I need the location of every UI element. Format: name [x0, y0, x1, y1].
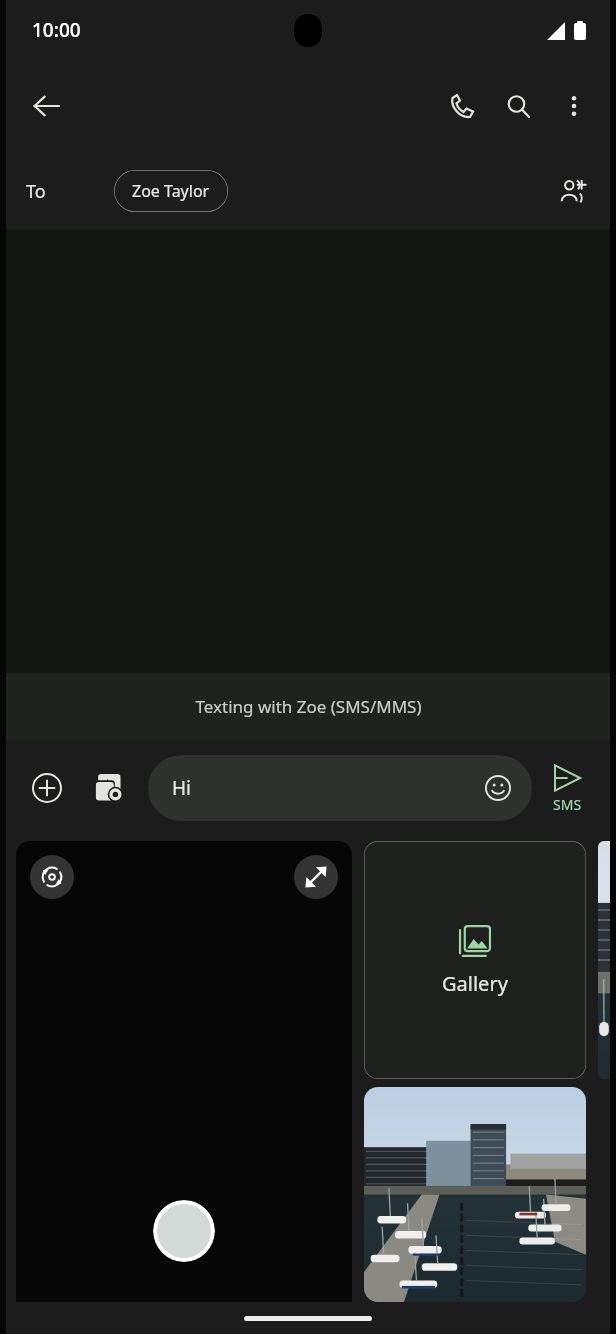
staticText: 10:00 — [32, 17, 81, 43]
button[interactable]: Zoe Taylor — [114, 170, 228, 212]
button[interactable]: Expand camera — [294, 855, 338, 899]
button[interactable]: More options — [546, 78, 602, 134]
button[interactable]: Send SMS — [538, 739, 596, 837]
button[interactable]: Gallery — [364, 841, 586, 1079]
staticText: Gallery — [442, 970, 508, 997]
button[interactable]: Call — [434, 78, 490, 134]
button[interactable]: Hi — [148, 755, 532, 821]
button[interactable]: Add attachment — [20, 761, 74, 815]
button[interactable]: Photo of marina — [364, 1087, 586, 1302]
button[interactable]: Emoji — [476, 766, 520, 810]
button[interactable]: Camera preview — [16, 841, 352, 1302]
staticText: Hi — [172, 775, 191, 801]
button[interactable]: More photos — [598, 841, 610, 1079]
button[interactable]: Camera and gallery — [82, 761, 136, 815]
staticText: To — [26, 179, 46, 204]
staticText: Zoe Taylor — [132, 180, 210, 202]
button[interactable]: Search — [490, 78, 546, 134]
button[interactable]: Take photo — [153, 1200, 215, 1262]
staticText: Texting with Zoe (SMS/MMS) — [195, 695, 422, 718]
button[interactable]: Add people — [546, 165, 598, 217]
staticText: SMS — [553, 795, 582, 814]
button[interactable]: Back — [18, 78, 74, 134]
button[interactable]: Flip camera — [30, 855, 74, 899]
